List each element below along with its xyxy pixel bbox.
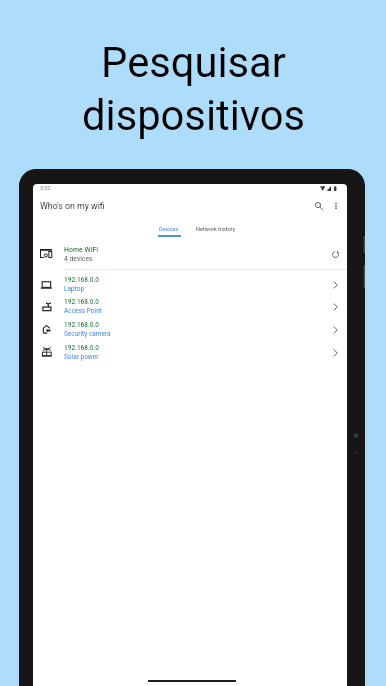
button[interactable]: Refresh	[328, 247, 342, 261]
button[interactable]: 192.168.0.0	[33, 272, 347, 295]
button[interactable]: More options	[327, 197, 345, 215]
staticText: Network history	[196, 226, 236, 233]
staticText: Devices	[159, 226, 179, 233]
staticText: Home WiFi	[64, 246, 99, 254]
button[interactable]: Home WiFi	[33, 240, 347, 269]
staticText: 192.168.0.0	[64, 276, 99, 284]
staticText: Laptop	[64, 285, 85, 293]
button[interactable]: 192.168.0.0	[33, 294, 347, 317]
button[interactable]: 192.168.0.0	[33, 340, 347, 363]
staticText: Access Point	[64, 307, 102, 315]
staticText: Pesquisar dispositivos	[82, 38, 305, 140]
staticText: Who's on my wifi	[40, 201, 105, 211]
staticText: 192.168.0.0	[64, 321, 99, 329]
staticText: 4 devices	[64, 255, 93, 263]
button[interactable]: Search	[310, 197, 328, 215]
staticText: 3:52	[40, 185, 51, 191]
staticText: Solar power	[64, 353, 99, 361]
staticText: 192.168.0.0	[64, 344, 99, 352]
button[interactable]: 192.168.0.0	[33, 317, 347, 340]
button[interactable]: Network history	[190, 220, 242, 237]
staticText: 192.168.0.0	[64, 298, 99, 306]
staticText: Security camera	[64, 330, 111, 338]
button[interactable]: Devices	[150, 220, 188, 237]
